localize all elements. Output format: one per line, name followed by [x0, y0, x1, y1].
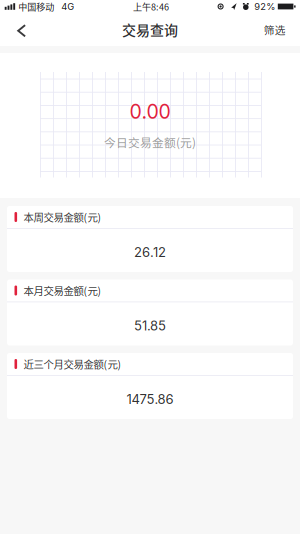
- staticText: 0.00: [129, 100, 170, 124]
- button[interactable]: 近三个月交易金额(元): [7, 353, 293, 419]
- button[interactable]: 筛选: [254, 13, 300, 46]
- staticText: 本周交易金额(元): [23, 209, 101, 225]
- staticText: 筛选: [264, 22, 286, 37]
- staticText: 交易查询: [122, 19, 178, 40]
- staticText: 51.85: [134, 318, 166, 333]
- staticText: 中国移动: [18, 0, 54, 13]
- staticText: 92%: [254, 1, 275, 12]
- staticText: 今日交易金额(元): [104, 134, 196, 151]
- staticText: 1475.86: [126, 391, 173, 407]
- button[interactable]: 本月交易金额(元): [7, 279, 293, 345]
- button[interactable]: 本周交易金额(元): [7, 206, 293, 272]
- staticText: 上午8:46: [133, 0, 169, 13]
- staticText: 本月交易金额(元): [23, 283, 101, 298]
- staticText: 26.12: [134, 244, 166, 260]
- staticText: 4G: [61, 1, 74, 12]
- staticText: 近三个月交易金额(元): [23, 356, 121, 372]
- button[interactable]: Back: [8, 13, 35, 46]
